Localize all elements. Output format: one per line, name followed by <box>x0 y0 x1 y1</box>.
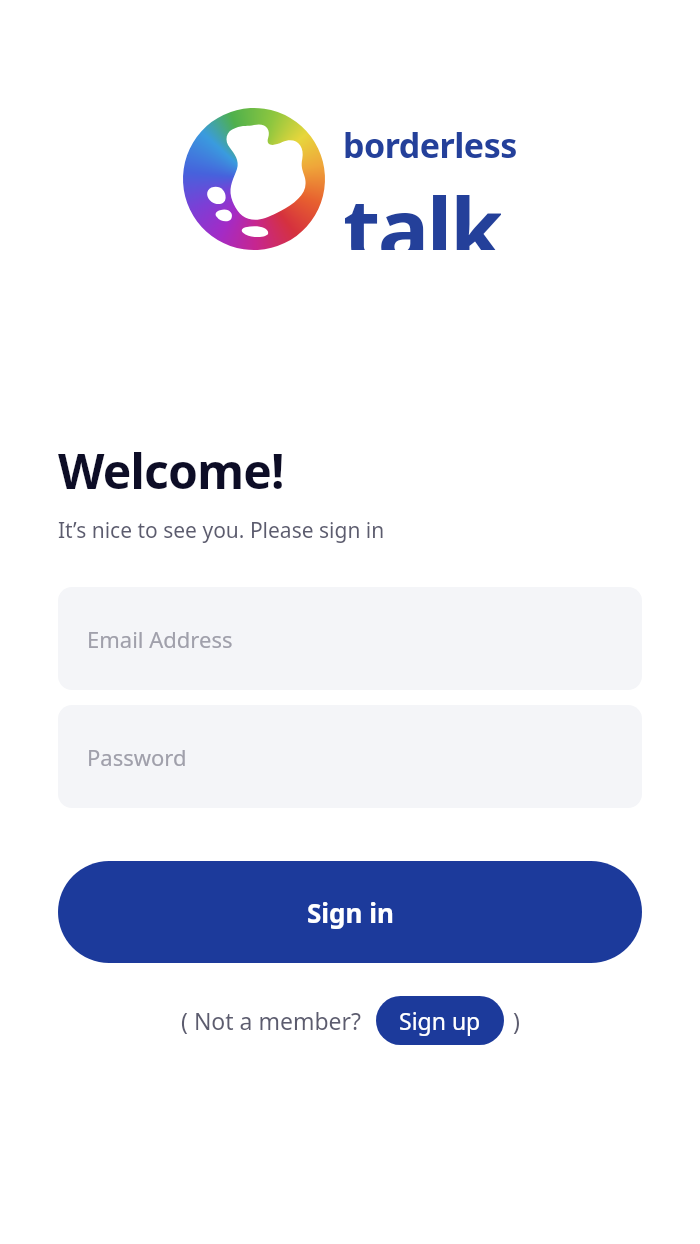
staticText: Sign up <box>399 1005 481 1036</box>
staticText: It’s nice to see you. Please sign in <box>58 516 385 545</box>
button[interactable]: Sign in <box>58 861 642 963</box>
staticText: Email Address <box>87 624 233 654</box>
button[interactable]: Password <box>58 705 642 808</box>
staticText: borderless <box>343 122 517 168</box>
staticText: Password <box>87 742 187 772</box>
button[interactable]: Sign up <box>376 996 504 1045</box>
button[interactable]: Email Address <box>58 587 642 690</box>
staticText: Welcome! <box>58 438 284 503</box>
staticText: Sign in <box>307 895 394 930</box>
staticText: ) <box>513 1005 520 1036</box>
staticText: talk <box>343 169 501 250</box>
other: Borderless Talk logo <box>183 108 325 250</box>
staticText: ( Not a member? <box>181 1005 362 1036</box>
